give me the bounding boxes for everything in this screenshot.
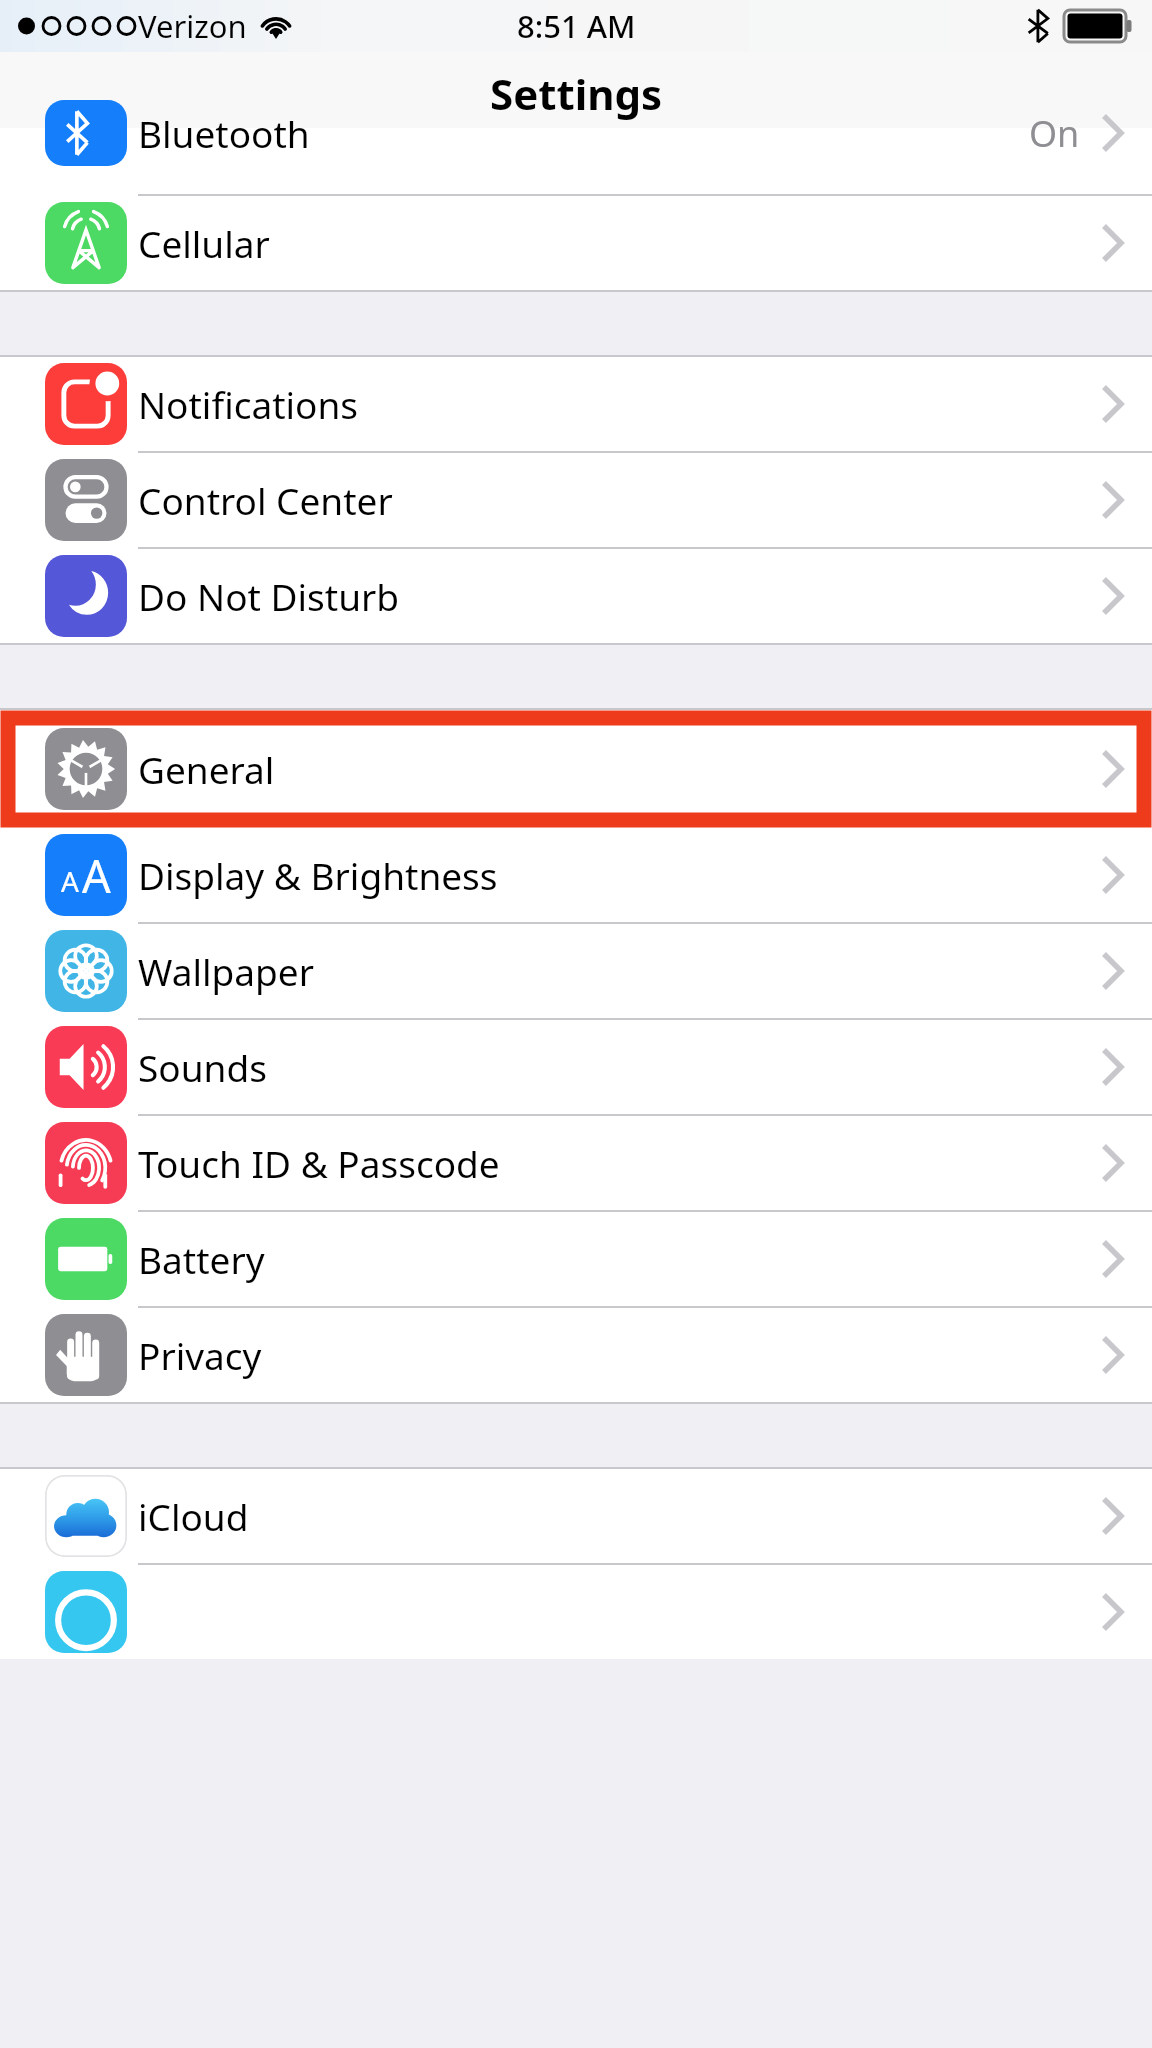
staticText: Control Center	[138, 475, 393, 525]
button[interactable]: Do Not Disturb	[0, 549, 1152, 643]
button[interactable]: Touch ID & Passcode	[0, 1116, 1152, 1210]
button[interactable]: Wallpaper	[0, 924, 1152, 1018]
button[interactable]: Bluetooth	[0, 128, 1152, 194]
staticText: Battery	[138, 1234, 265, 1284]
staticText: iCloud	[138, 1491, 249, 1541]
staticText: Wallpaper	[138, 946, 314, 996]
staticText: On	[1029, 109, 1080, 158]
staticText: General	[138, 744, 275, 794]
staticText: A	[61, 862, 79, 900]
staticText: Verizon	[138, 5, 247, 47]
button[interactable]: Privacy	[0, 1308, 1152, 1402]
button[interactable]: General	[0, 722, 1152, 816]
button[interactable]: Sounds	[0, 1020, 1152, 1114]
button[interactable]: Notifications	[0, 357, 1152, 451]
staticText: Bluetooth	[138, 108, 310, 158]
button[interactable]: Battery	[0, 1212, 1152, 1306]
staticText: 8:51 AM	[517, 5, 636, 47]
staticText: Cellular	[138, 218, 270, 268]
button[interactable]: Cellular	[0, 196, 1152, 290]
staticText: Privacy	[138, 1330, 262, 1380]
staticText: Settings	[490, 65, 663, 122]
button[interactable]: iCloud	[0, 1469, 1152, 1563]
button[interactable]: iTunes and App Store	[0, 1565, 1152, 1659]
button[interactable]: A	[0, 828, 1152, 922]
staticText: Touch ID & Passcode	[138, 1138, 500, 1188]
staticText: Notifications	[138, 379, 359, 429]
staticText: Do Not Disturb	[138, 571, 400, 621]
staticText: A	[82, 845, 111, 906]
staticText: Display & Brightness	[138, 850, 498, 900]
staticText: Sounds	[138, 1042, 267, 1092]
button[interactable]: Control Center	[0, 453, 1152, 547]
